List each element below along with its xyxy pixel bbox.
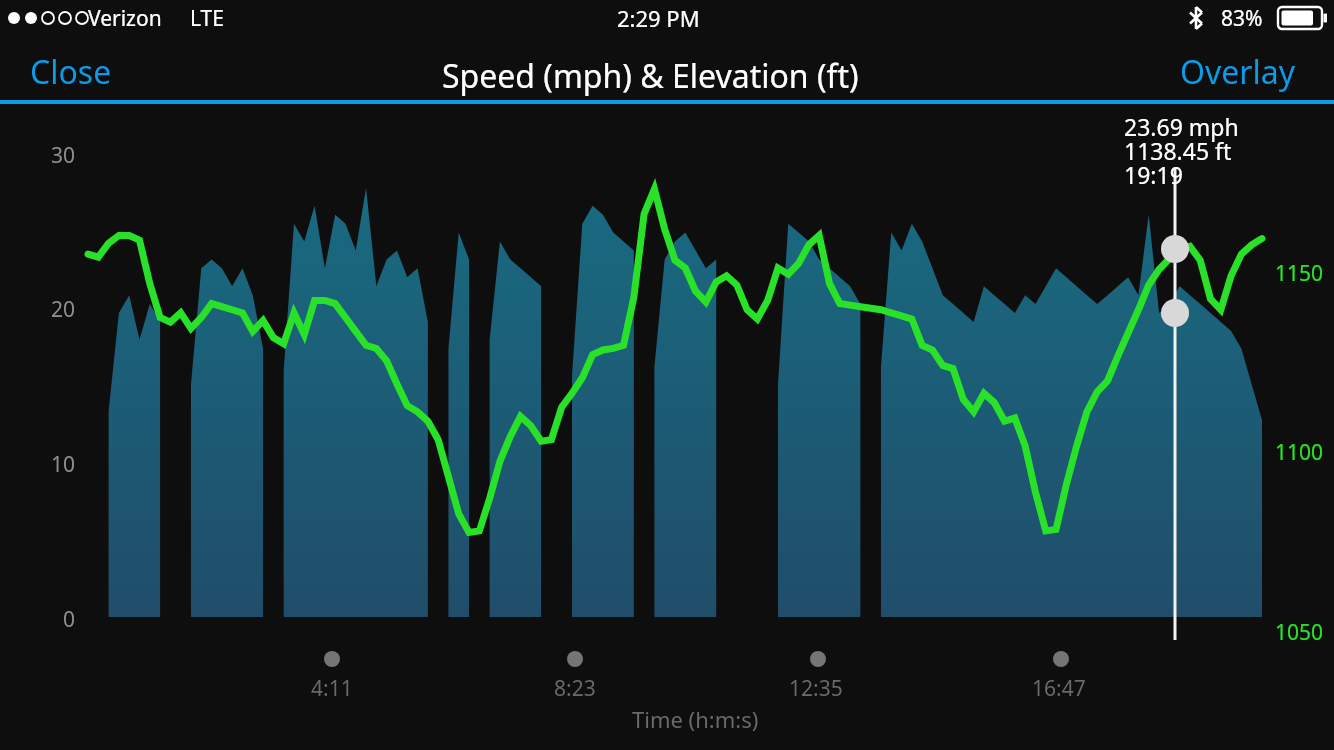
staticText: Close (30, 50, 112, 94)
staticText: 0 (63, 605, 76, 634)
staticText: 1150 (1275, 259, 1324, 288)
staticText: LTE (190, 4, 224, 33)
staticText: 1138.45 ft (1124, 135, 1232, 166)
staticText: 2:29 PM (617, 3, 700, 33)
staticText: 1100 (1275, 438, 1324, 467)
staticText: 12:35 (789, 674, 843, 703)
staticText: 20 (51, 295, 76, 324)
staticText: Speed (mph) & Elevation (ft) (442, 54, 859, 98)
staticText: 19:19 (1124, 159, 1183, 190)
staticText: 10 (51, 450, 76, 479)
staticText: 83% (1221, 4, 1263, 33)
staticText: 30 (51, 141, 76, 170)
staticText: Verizon (88, 4, 162, 33)
staticText: Time (h:m:s) (632, 704, 759, 734)
button[interactable]: Overlay (1180, 50, 1306, 94)
staticText: 4:11 (311, 674, 353, 703)
staticText: 23.69 mph (1124, 111, 1239, 142)
staticText: 1050 (1275, 618, 1324, 647)
staticText: 8:23 (554, 674, 596, 703)
staticText: 16:47 (1032, 674, 1086, 703)
button[interactable]: Close (30, 50, 142, 94)
staticText: Overlay (1180, 50, 1296, 94)
